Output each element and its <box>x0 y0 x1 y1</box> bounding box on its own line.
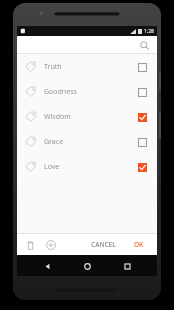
button[interactable]: Delete <box>22 237 38 253</box>
staticText: OK <box>134 240 144 249</box>
staticText: Wisdom <box>44 112 135 122</box>
button[interactable]: Back <box>37 256 57 276</box>
staticText: CANCEL <box>91 240 116 249</box>
button[interactable]: Recents <box>117 256 137 276</box>
staticText: Goodness <box>44 87 135 97</box>
button[interactable]: Search <box>137 38 151 52</box>
staticText: 1:28 <box>144 28 154 35</box>
button[interactable]: Love <box>17 154 157 179</box>
button[interactable]: OK <box>130 237 148 252</box>
button[interactable]: Grace <box>17 129 157 154</box>
button[interactable]: Home <box>77 256 97 276</box>
staticText: Love <box>44 162 135 172</box>
staticText: Truth <box>44 62 135 72</box>
button[interactable]: Goodness <box>17 79 157 104</box>
button[interactable]: Add tag <box>43 237 59 253</box>
staticText: Grace <box>44 137 135 147</box>
button[interactable]: CANCEL <box>87 237 120 252</box>
button[interactable]: Truth <box>17 54 157 79</box>
button[interactable]: Wisdom <box>17 104 157 129</box>
